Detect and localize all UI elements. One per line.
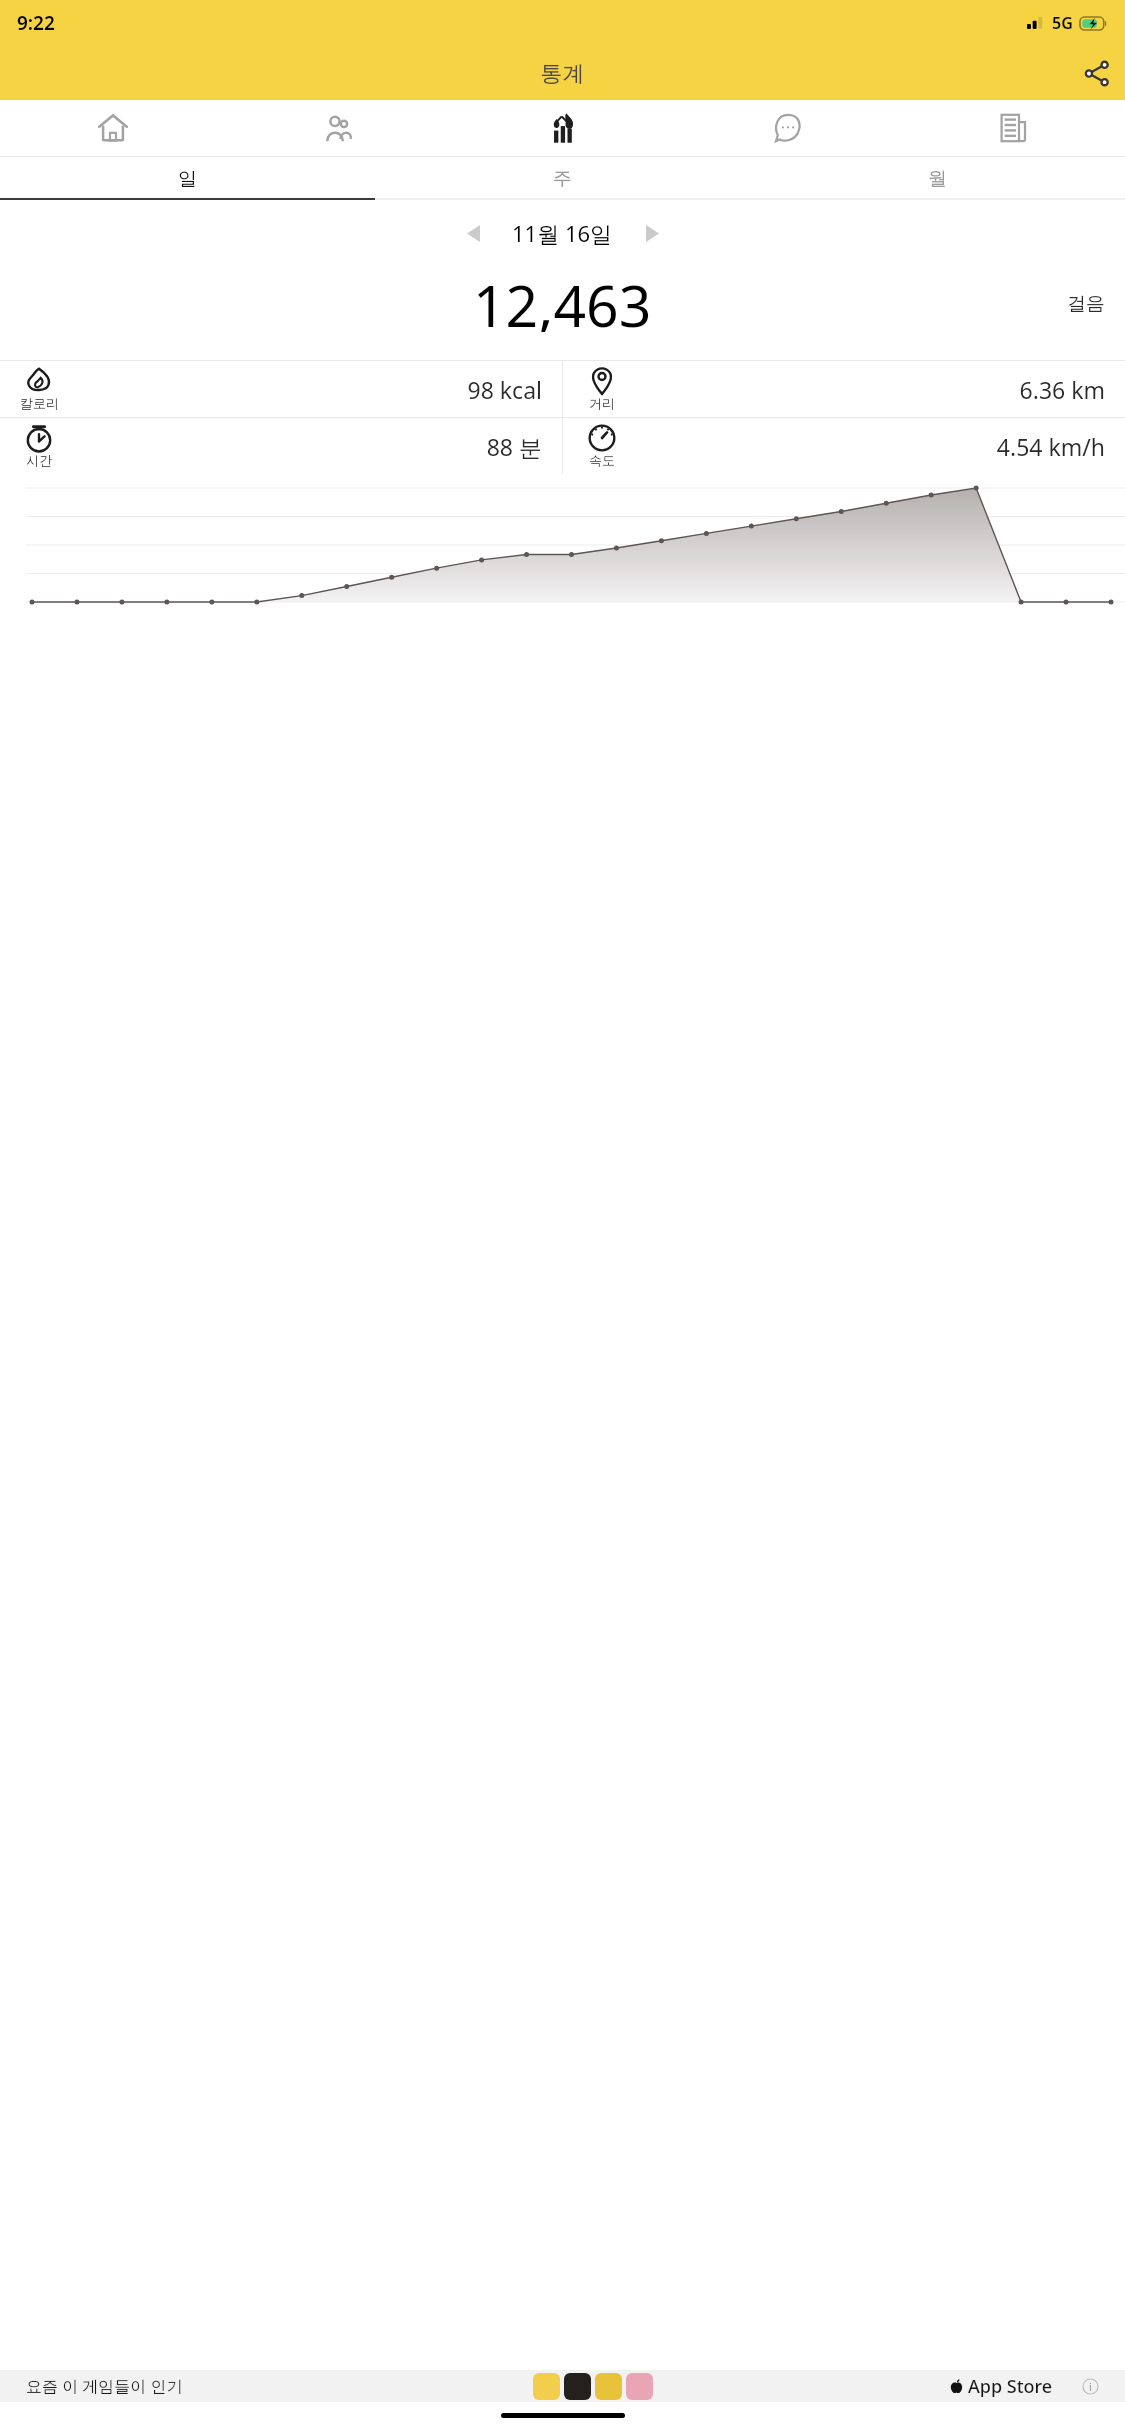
button[interactable]: 거리 xyxy=(563,361,1125,417)
button[interactable]: Share xyxy=(1067,47,1125,100)
staticText: 4.54 km/h xyxy=(629,431,1105,462)
button[interactable]: 일 xyxy=(0,157,375,200)
button[interactable]: 요즘 이 게임들이 인기 xyxy=(0,2370,1125,2402)
button[interactable]: News xyxy=(900,100,1125,156)
button[interactable]: Previous day xyxy=(452,212,494,254)
button[interactable]: Home xyxy=(0,100,225,156)
button[interactable]: Chat xyxy=(675,100,900,156)
staticText: 9:22 xyxy=(17,10,55,36)
staticText: 월 xyxy=(928,167,947,191)
staticText: 일 xyxy=(178,167,197,191)
staticText: 칼로리 xyxy=(20,395,59,411)
button[interactable]: 월 xyxy=(750,157,1125,200)
button[interactable]: Statistics xyxy=(450,100,675,156)
staticText: 98 kcal xyxy=(66,374,542,405)
staticText: 걸음 xyxy=(1067,292,1105,316)
staticText: 통계 xyxy=(58,60,1067,88)
button[interactable]: 칼로리 xyxy=(0,361,562,417)
button[interactable]: 속도 xyxy=(563,418,1125,474)
staticText: 거리 xyxy=(589,395,615,411)
staticText: 요즘 이 게임들이 인기 xyxy=(26,2375,183,2397)
button[interactable]: 시간 xyxy=(0,418,562,474)
button[interactable]: Next day xyxy=(631,212,673,254)
staticText: 11월 16일 xyxy=(512,218,613,248)
staticText: i xyxy=(1089,2379,1092,2394)
staticText: App Store xyxy=(968,2374,1053,2399)
button[interactable]: Friends xyxy=(225,100,450,156)
staticText: 12,463 xyxy=(473,266,652,332)
button[interactable]: 주 xyxy=(375,157,750,200)
staticText: 88 분 xyxy=(66,431,542,462)
staticText: 주 xyxy=(553,167,572,191)
staticText: 시간 xyxy=(26,452,52,468)
staticText: 속도 xyxy=(589,452,615,468)
staticText: 6.36 km xyxy=(629,374,1105,405)
staticText: 5G xyxy=(1052,12,1073,34)
